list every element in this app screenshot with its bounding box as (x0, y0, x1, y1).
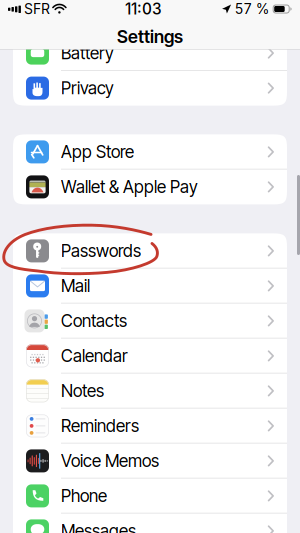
button[interactable]: Calendar (13, 338, 287, 373)
button[interactable]: Battery (13, 36, 287, 71)
button[interactable]: Reminders (13, 408, 287, 443)
staticText: Phone (61, 486, 107, 506)
staticText: Reminders (61, 416, 139, 436)
staticText: Settings (117, 26, 183, 47)
staticText: Mail (61, 276, 90, 296)
button[interactable]: Privacy (13, 71, 287, 106)
button[interactable]: Mail (13, 268, 287, 303)
button[interactable]: Passwords (13, 233, 287, 268)
staticText: Voice Memos (61, 451, 159, 471)
button[interactable]: Notes (13, 373, 287, 408)
staticText: Battery (61, 43, 114, 63)
staticText: Passwords (61, 241, 141, 261)
button[interactable]: Phone (13, 478, 287, 513)
staticText: 57 % (235, 0, 270, 17)
staticText: Messages (61, 521, 136, 533)
staticText: Calendar (61, 346, 128, 366)
staticText: Privacy (61, 78, 114, 98)
staticText: Wallet & Apple Pay (61, 177, 198, 197)
button[interactable]: Contacts (13, 303, 287, 338)
staticText: Contacts (61, 311, 127, 331)
button[interactable]: Voice Memos (13, 443, 287, 478)
staticText: App Store (61, 142, 134, 162)
staticText: Notes (61, 381, 104, 401)
button[interactable]: Messages (13, 513, 287, 533)
button[interactable]: Wallet & Apple Pay (13, 169, 287, 204)
staticText: SFR (24, 0, 50, 17)
staticText: 11:03 (125, 0, 162, 18)
button[interactable]: App Store (13, 134, 287, 169)
